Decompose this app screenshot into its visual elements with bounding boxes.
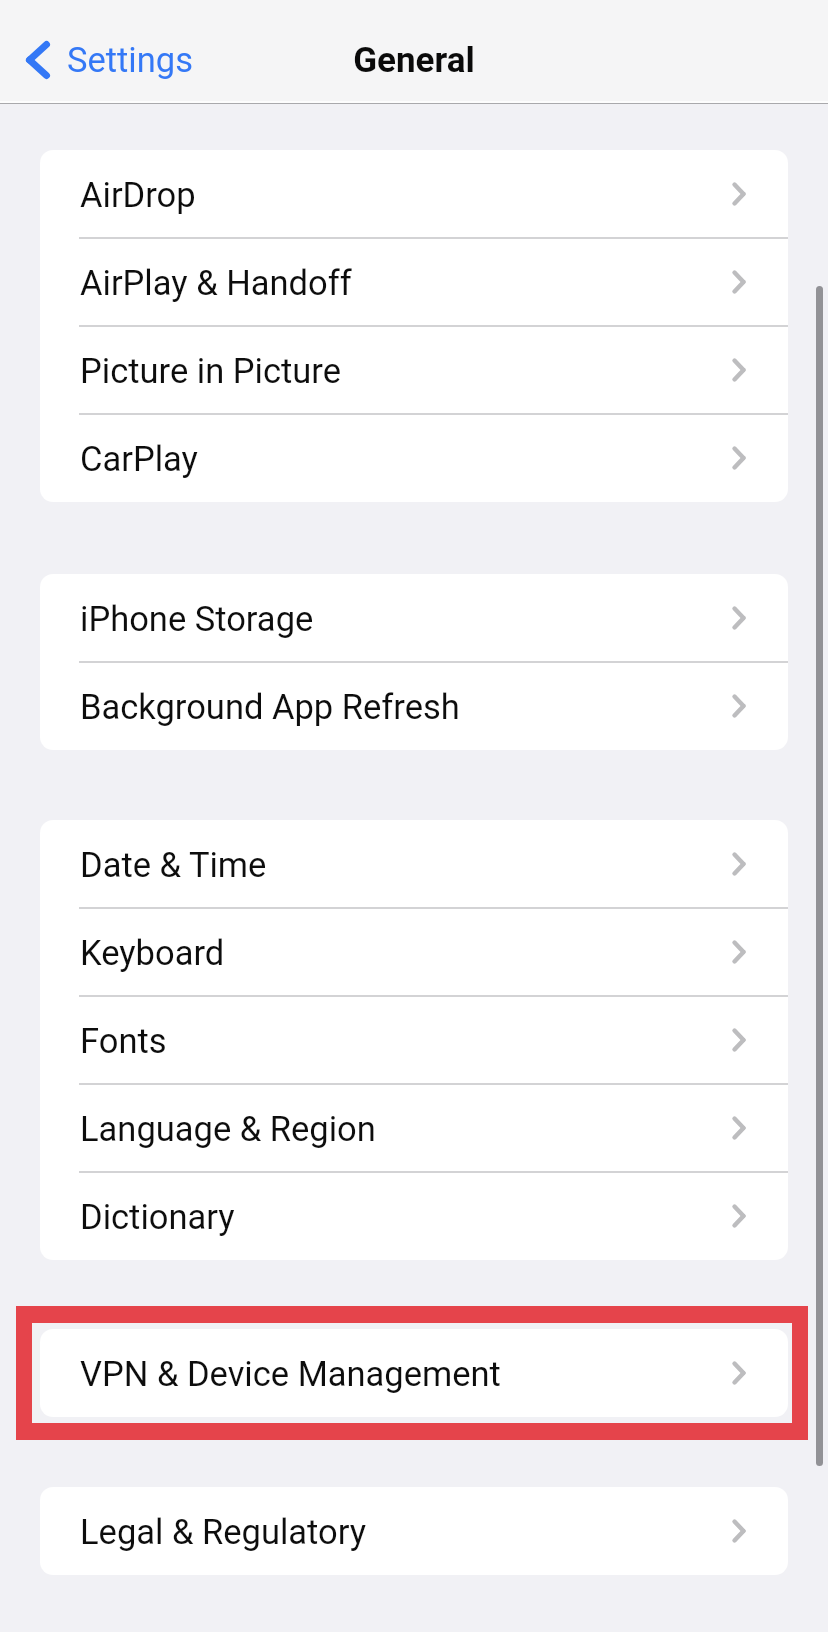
staticText: Keyboard: [80, 933, 225, 973]
button[interactable]: Dictionary: [40, 1172, 788, 1260]
staticText: Fonts: [80, 1021, 167, 1061]
button[interactable]: Date & Time: [40, 820, 788, 908]
staticText: AirDrop: [80, 175, 196, 215]
other: Back: [26, 41, 50, 79]
staticText: Background App Refresh: [80, 687, 460, 727]
staticText: Date & Time: [80, 845, 267, 885]
staticText: Legal & Regulatory: [80, 1512, 367, 1552]
staticText: General: [353, 40, 475, 81]
button[interactable]: AirPlay & Handoff: [40, 238, 788, 326]
button[interactable]: Keyboard: [40, 908, 788, 996]
staticText: AirPlay & Handoff: [80, 263, 352, 303]
staticText: iPhone Storage: [80, 599, 314, 639]
button[interactable]: Legal & Regulatory: [40, 1487, 788, 1575]
button[interactable]: Background App Refresh: [40, 662, 788, 750]
button[interactable]: AirDrop: [40, 150, 788, 238]
button[interactable]: Picture in Picture: [40, 326, 788, 414]
staticText: Picture in Picture: [80, 351, 341, 391]
button[interactable]: VPN & Device Management: [40, 1329, 788, 1417]
staticText: VPN & Device Management: [80, 1354, 501, 1394]
button[interactable]: Back: [0, 40, 205, 80]
staticText: CarPlay: [80, 439, 198, 479]
button[interactable]: iPhone Storage: [40, 574, 788, 662]
staticText: Language & Region: [80, 1109, 376, 1149]
button[interactable]: CarPlay: [40, 414, 788, 502]
staticText: Dictionary: [80, 1197, 235, 1237]
button[interactable]: Language & Region: [40, 1084, 788, 1172]
button[interactable]: Fonts: [40, 996, 788, 1084]
staticText: Settings: [67, 40, 193, 80]
